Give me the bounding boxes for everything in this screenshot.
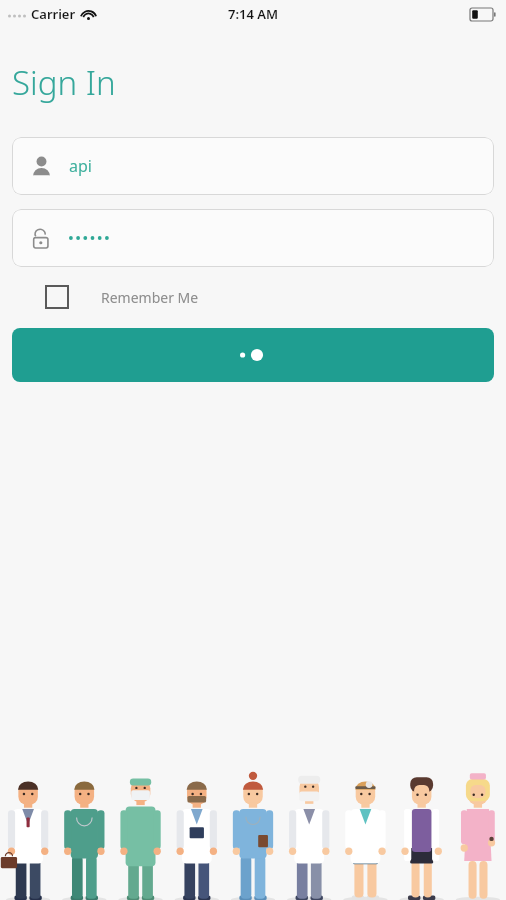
button[interactable]: Remember Me <box>45 280 199 314</box>
button[interactable]: api <box>12 137 494 195</box>
staticText: api <box>69 155 92 177</box>
staticText: Remember Me <box>101 288 199 307</box>
button[interactable] <box>12 209 494 267</box>
staticText: Carrier <box>31 5 76 23</box>
button[interactable]: Sign In <box>12 328 494 382</box>
staticText: Sign In <box>12 60 116 105</box>
staticText: 7:14 AM <box>228 5 279 23</box>
